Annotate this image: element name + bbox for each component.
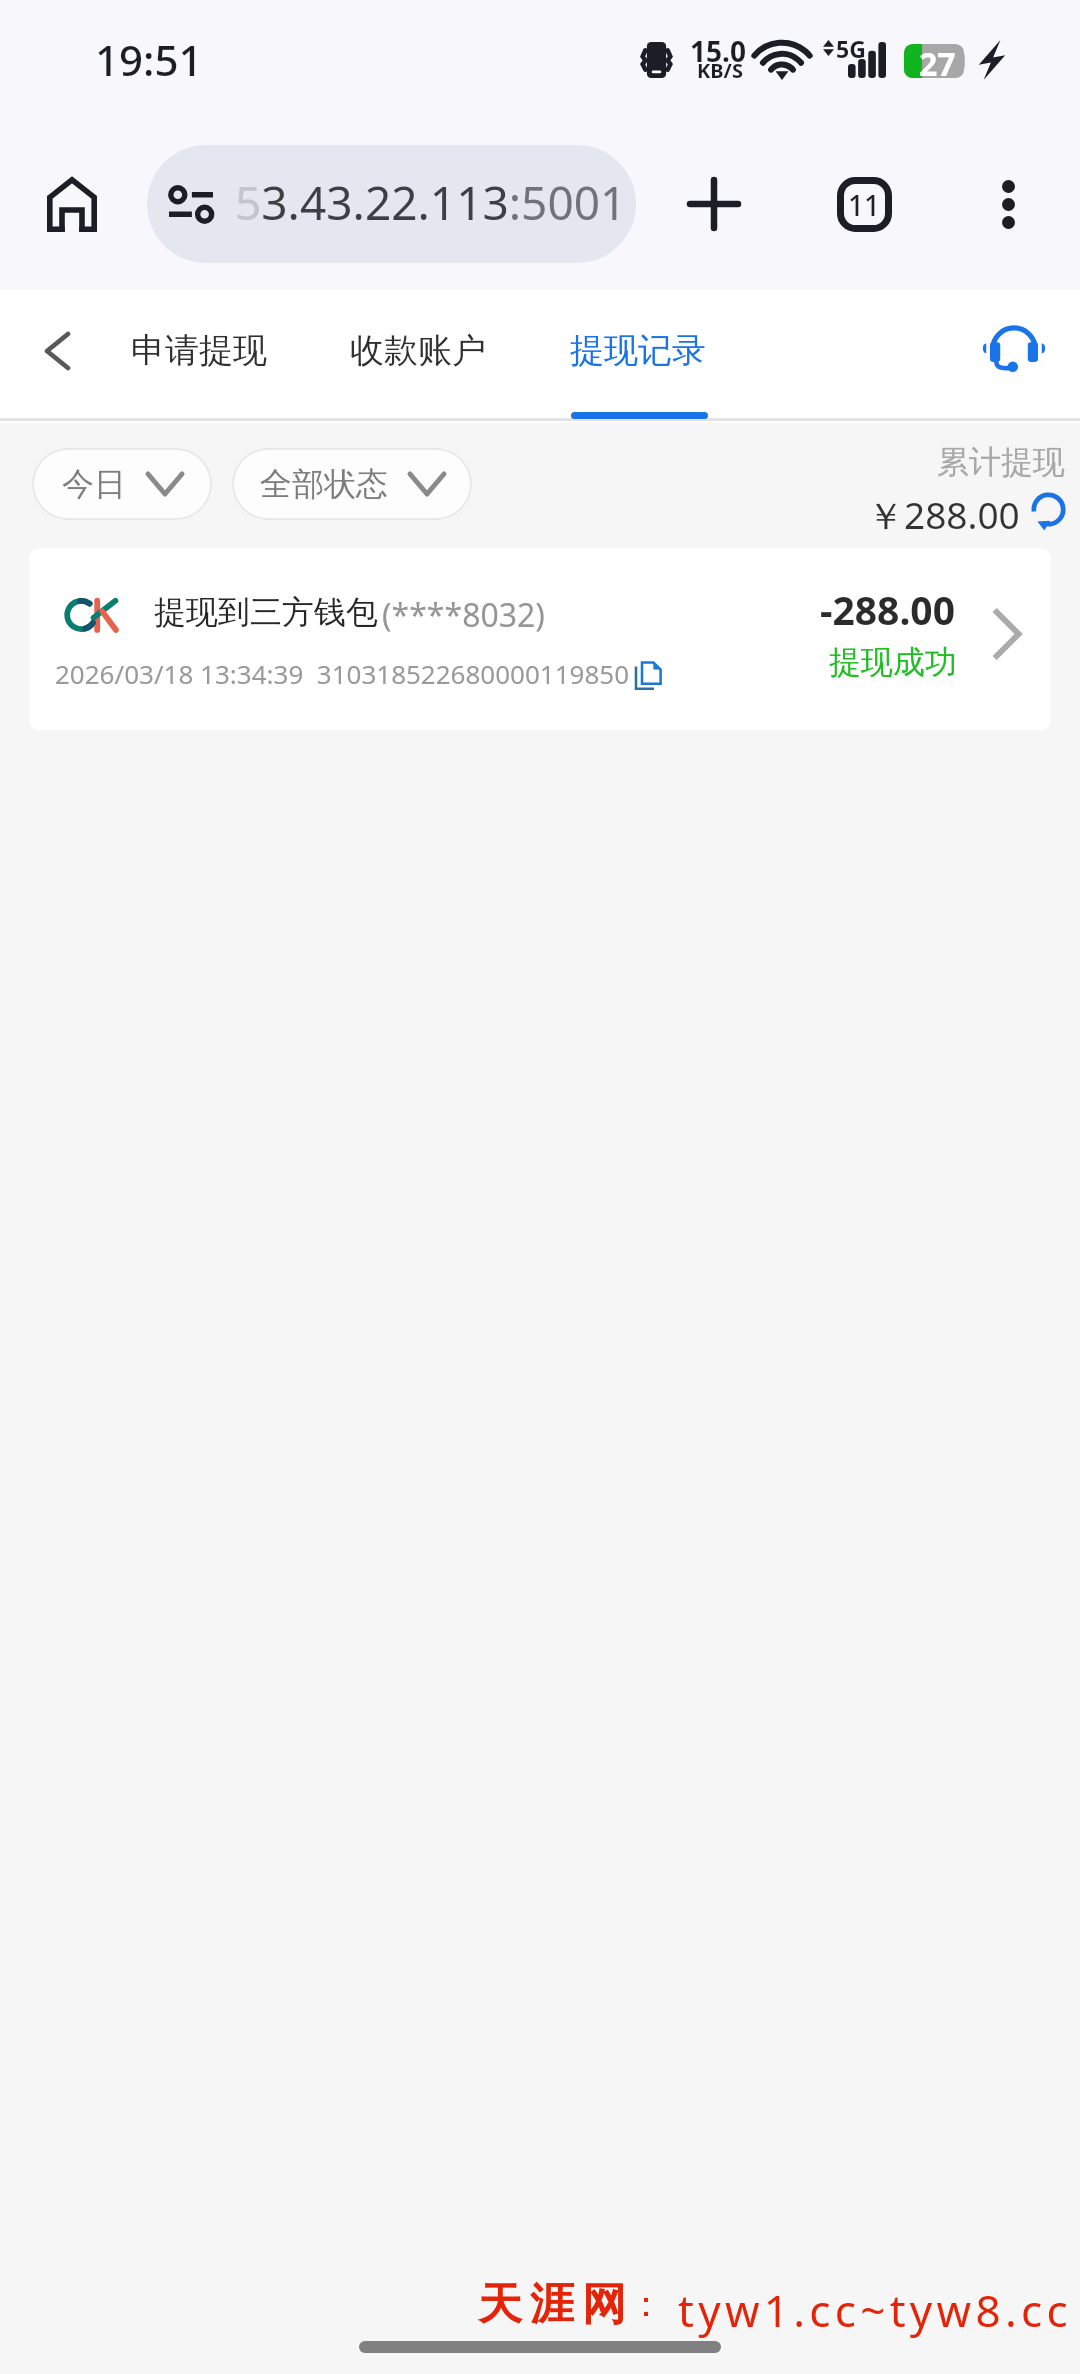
- staticText: tyw1.cc~tyw8.cc: [678, 2280, 1072, 2340]
- staticText: KB/S: [697, 57, 743, 84]
- staticText: 累计提现: [937, 442, 1065, 482]
- staticText: 15.0: [690, 32, 746, 70]
- button[interactable]: 申请提现: [116, 308, 282, 392]
- staticText: 今日: [62, 464, 126, 504]
- staticText: ：: [628, 2281, 664, 2326]
- staticText: 收款账户: [350, 329, 486, 372]
- button[interactable]: More options: [964, 160, 1052, 248]
- staticText: 19:51: [95, 31, 203, 88]
- button[interactable]: 提现到三方钱包: [29, 548, 1051, 730]
- button[interactable]: Home: [28, 160, 116, 248]
- button[interactable]: New tab: [670, 160, 758, 248]
- staticText: 53.43.22.113:5001: [235, 171, 627, 234]
- button[interactable]: Customer service: [972, 308, 1056, 392]
- button[interactable]: 今日: [34, 450, 210, 518]
- button[interactable]: 收款账户: [335, 308, 501, 392]
- staticText: 全部状态: [260, 464, 388, 504]
- staticText: 5G: [836, 33, 866, 64]
- staticText: 提现到三方钱包: [154, 592, 378, 632]
- staticText: 天涯网: [474, 2277, 630, 2332]
- staticText: 11: [848, 186, 881, 224]
- button[interactable]: 提现记录: [555, 308, 721, 392]
- button[interactable]: Back: [12, 306, 102, 396]
- staticText: 申请提现: [131, 329, 267, 372]
- staticText: ￥288.00: [867, 489, 1020, 540]
- staticText: 27: [919, 42, 956, 86]
- staticText: 2026/03/18 13:34:39 31031852268000011985…: [55, 656, 630, 691]
- staticText: (****8032): [382, 593, 545, 637]
- staticText: 提现成功: [829, 642, 957, 682]
- button[interactable]: Copy: [633, 660, 663, 692]
- button[interactable]: 53.43.22.113:5001: [147, 145, 636, 263]
- button[interactable]: 全部状态: [234, 450, 470, 518]
- staticText: -288.00: [820, 583, 955, 636]
- staticText: 提现记录: [570, 329, 706, 372]
- button[interactable]: Tabs: [820, 160, 908, 248]
- button[interactable]: Refresh: [1031, 492, 1066, 527]
